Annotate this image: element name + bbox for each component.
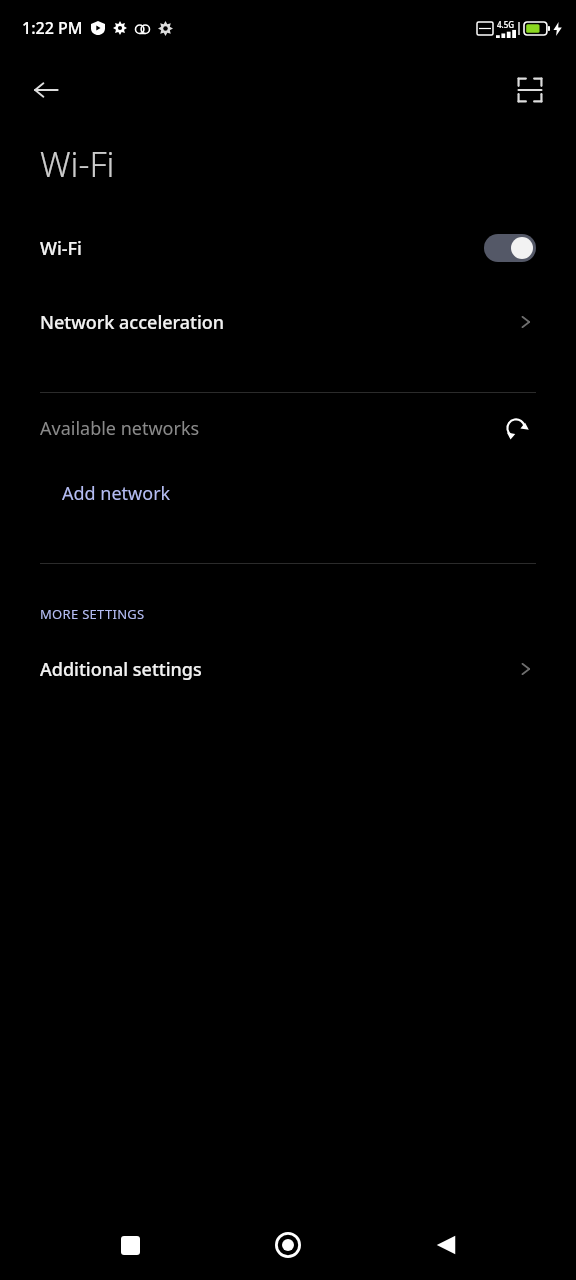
staticText: Available networks <box>40 416 200 441</box>
button[interactable]: Back <box>22 66 70 114</box>
button[interactable]: Refresh networks <box>496 408 536 448</box>
button[interactable]: Wi-Fi <box>0 204 576 292</box>
staticText: 1:22 PM <box>22 17 83 39</box>
staticText: Add network <box>62 481 171 506</box>
button[interactable]: Add network <box>0 463 576 523</box>
button[interactable]: Home <box>260 1217 316 1273</box>
staticText: Wi-Fi <box>40 141 115 187</box>
button[interactable]: Back <box>418 1217 474 1273</box>
staticText: Network acceleration <box>40 310 225 335</box>
button[interactable]: Scan QR code <box>506 66 554 114</box>
button[interactable]: Additional settings <box>0 634 576 704</box>
button[interactable]: Network acceleration <box>0 292 576 352</box>
staticText: Additional settings <box>40 657 202 682</box>
staticText: 4.5G <box>497 19 515 30</box>
staticText: Wi-Fi <box>40 236 82 261</box>
button[interactable]: Recent apps <box>102 1217 158 1273</box>
staticText: MORE SETTINGS <box>40 605 145 623</box>
